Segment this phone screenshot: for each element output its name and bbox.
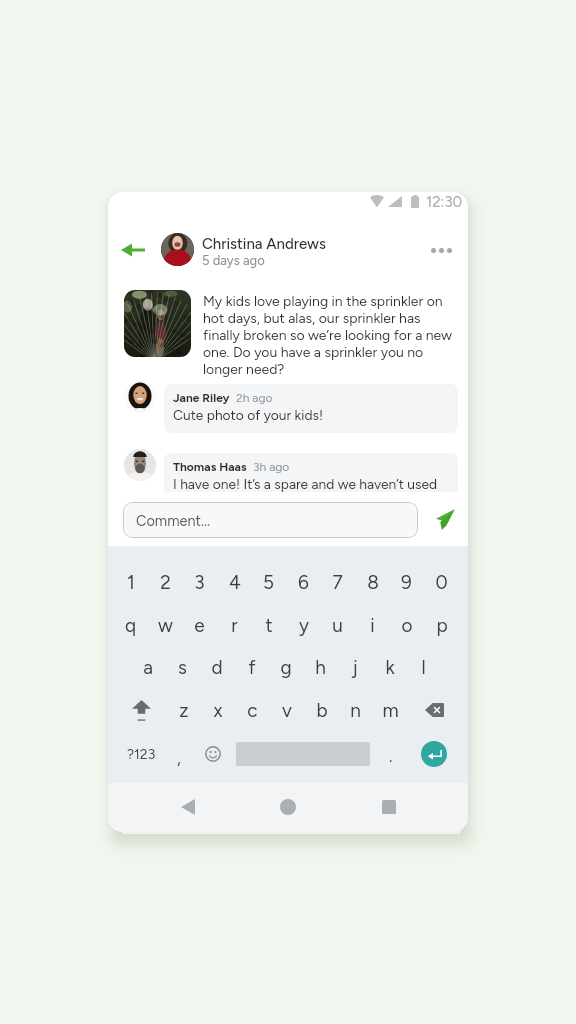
staticText: v [282, 699, 292, 722]
button[interactable]: k [372, 646, 407, 688]
staticText: 2 [160, 571, 171, 594]
button[interactable]: l [406, 646, 441, 688]
staticText: n [350, 699, 361, 722]
button[interactable]: More options [423, 232, 459, 268]
staticText: g [280, 656, 292, 679]
button[interactable]: 0 [424, 561, 459, 603]
button[interactable]: Back [113, 230, 153, 270]
button[interactable]: Recents [367, 785, 411, 829]
staticText: j [352, 656, 358, 679]
button[interactable]: Home [266, 785, 310, 829]
staticText: 1 [127, 571, 135, 594]
button[interactable]: t [251, 604, 286, 646]
button[interactable]: s [165, 646, 200, 688]
staticText: u [332, 614, 343, 637]
button[interactable]: , [163, 733, 195, 775]
staticText: w [158, 614, 173, 637]
button[interactable]: Enter [421, 741, 447, 767]
staticText: t [265, 614, 273, 637]
button[interactable]: x [200, 689, 235, 731]
staticText: l [421, 656, 426, 679]
button[interactable]: Thomas Haas [164, 453, 458, 521]
button[interactable]: Comment... [123, 502, 418, 538]
staticText: 6 [298, 571, 309, 594]
staticText: Cute photo of your kids! [173, 407, 324, 424]
staticText: f [248, 656, 256, 679]
staticText: 5 [263, 571, 274, 594]
staticText: y [299, 614, 309, 637]
staticText: e [194, 614, 205, 637]
staticText: s [178, 656, 187, 679]
staticText: 9 [401, 571, 412, 594]
button[interactable]: 6 [286, 561, 321, 603]
staticText: , [177, 748, 181, 768]
button[interactable]: v [269, 689, 304, 731]
staticText: z [179, 699, 189, 722]
button[interactable]: o [389, 604, 424, 646]
button[interactable]: z [166, 689, 201, 731]
staticText: Jane Riley [173, 391, 230, 405]
button[interactable]: a [130, 646, 165, 688]
button[interactable]: y [286, 604, 321, 646]
button[interactable]: c [235, 689, 270, 731]
button[interactable]: q [113, 604, 148, 646]
staticText: o [401, 614, 413, 637]
button[interactable]: m [373, 689, 408, 731]
staticText: h [315, 656, 326, 679]
staticText: 12:30 [426, 193, 463, 211]
button[interactable]: Jane Riley [164, 384, 458, 433]
staticText: a [143, 656, 153, 679]
button[interactable]: . [375, 733, 407, 775]
button[interactable]: r [217, 604, 252, 646]
staticText: k [385, 656, 395, 679]
staticText: 3 [194, 571, 205, 594]
button[interactable]: d [199, 646, 234, 688]
button[interactable]: ?123 [115, 733, 167, 775]
staticText: ?123 [127, 746, 156, 763]
button[interactable]: 9 [389, 561, 424, 603]
button[interactable]: 5 [251, 561, 286, 603]
staticText: m [382, 699, 399, 722]
staticText: x [213, 699, 223, 722]
staticText: 2h ago [236, 391, 273, 405]
staticText: c [247, 699, 258, 722]
button[interactable]: g [268, 646, 303, 688]
staticText: 5 days ago [202, 253, 265, 269]
staticText: Thomas Haas [173, 460, 247, 474]
button[interactable]: Backspace [410, 689, 458, 731]
button[interactable]: Emoji [197, 733, 229, 775]
button[interactable]: i [355, 604, 390, 646]
staticText: 0 [435, 571, 448, 594]
button[interactable]: j [337, 646, 372, 688]
button[interactable]: 1 [113, 561, 148, 603]
button[interactable]: 8 [355, 561, 390, 603]
staticText: d [211, 656, 223, 679]
staticText: i [370, 614, 375, 637]
button[interactable]: n [338, 689, 373, 731]
button[interactable]: f [234, 646, 269, 688]
button[interactable]: 3 [182, 561, 217, 603]
staticText: 3h ago [253, 460, 290, 474]
staticText: . [389, 746, 393, 766]
staticText: b [316, 699, 328, 722]
button[interactable]: 7 [320, 561, 355, 603]
staticText: My kids love playing in the sprinkler on… [203, 293, 453, 378]
staticText: Comment... [136, 512, 211, 529]
button[interactable]: w [148, 604, 183, 646]
button[interactable]: b [304, 689, 339, 731]
staticText: 8 [367, 571, 379, 594]
button[interactable]: Shift [117, 689, 165, 731]
button[interactable]: 4 [217, 561, 252, 603]
button[interactable]: h [303, 646, 338, 688]
staticText: 4 [229, 571, 241, 594]
button[interactable]: 2 [148, 561, 183, 603]
button[interactable]: u [320, 604, 355, 646]
button[interactable]: Send [426, 502, 460, 536]
staticText: I have one! It’s a spare and we haven’t … [173, 476, 448, 512]
button[interactable]: e [182, 604, 217, 646]
button[interactable]: Back [166, 785, 210, 829]
button[interactable]: Post photo [124, 290, 191, 357]
button[interactable]: p [424, 604, 459, 646]
staticText: Christina Andrews [202, 235, 326, 253]
